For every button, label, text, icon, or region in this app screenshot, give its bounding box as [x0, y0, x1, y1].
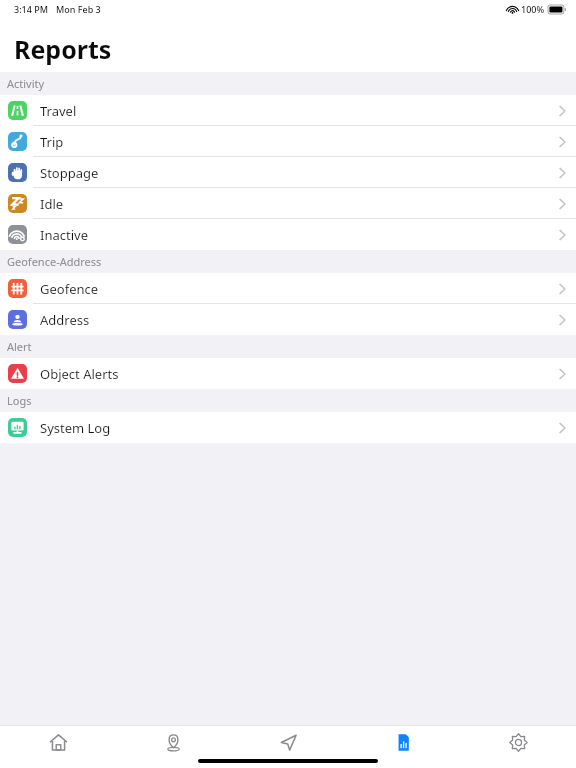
staticText: Reports [14, 32, 112, 66]
staticText: Activity [7, 76, 45, 91]
staticText: 3:14 PM [14, 3, 48, 15]
staticText: Trip [40, 133, 64, 151]
button[interactable]: Inactive [0, 219, 576, 250]
button[interactable]: Travel [0, 95, 576, 126]
button[interactable]: Settings [461, 726, 576, 768]
staticText: Mon Feb 3 [56, 3, 101, 15]
button[interactable]: Trip [0, 126, 576, 157]
button[interactable]: Idle [0, 188, 576, 219]
button[interactable]: Geofence [0, 273, 576, 304]
staticText: Stoppage [40, 164, 99, 182]
button[interactable]: Home [0, 726, 116, 768]
button[interactable]: Places [116, 726, 231, 768]
button[interactable]: Reports [346, 726, 461, 768]
staticText: Alert [7, 339, 32, 354]
staticText: Geofence-Address [7, 254, 102, 269]
button[interactable]: Stoppage [0, 157, 576, 188]
staticText: Geofence [40, 280, 99, 298]
staticText: Logs [7, 393, 32, 408]
button[interactable]: Address [0, 304, 576, 335]
button[interactable]: Object Alerts [0, 358, 576, 389]
staticText: Idle [40, 195, 64, 213]
button[interactable]: System Log [0, 412, 576, 443]
staticText: 100% [521, 3, 545, 15]
staticText: System Log [40, 419, 111, 437]
staticText: Address [40, 311, 90, 329]
staticText: Object Alerts [40, 365, 119, 383]
button[interactable]: Navigate [231, 726, 346, 768]
staticText: Travel [40, 102, 77, 120]
staticText: Inactive [40, 226, 88, 244]
